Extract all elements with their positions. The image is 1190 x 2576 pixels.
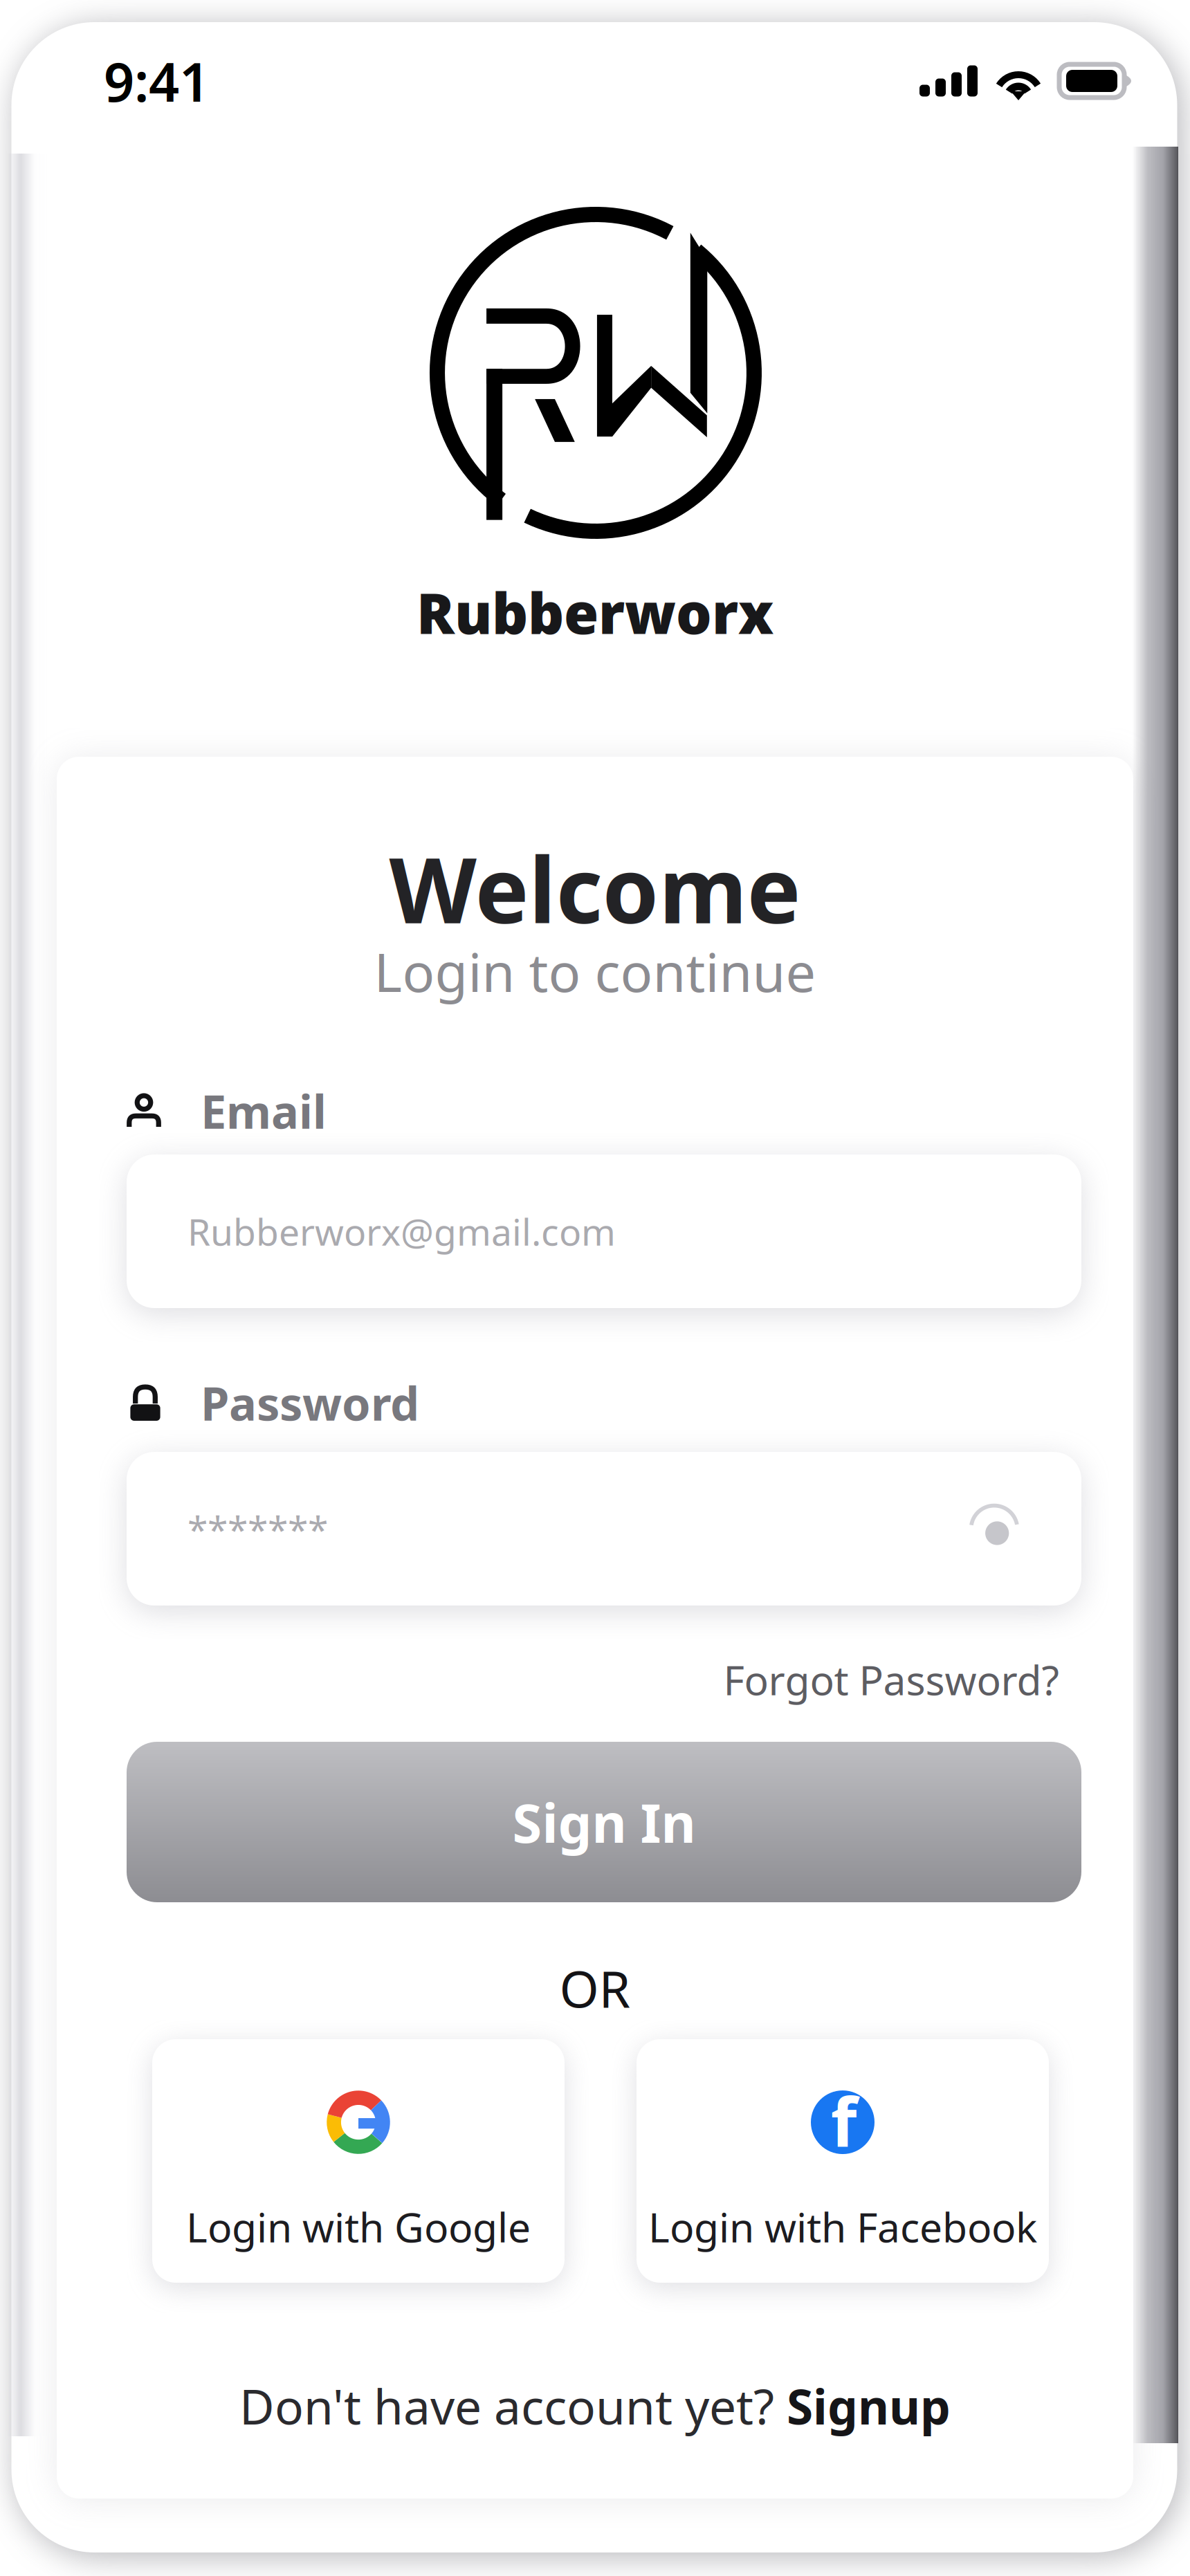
staticText: Don't have account yet? (239, 2374, 787, 2438)
staticText: Forgot Password? (723, 1653, 1059, 1706)
staticText: Welcome (389, 828, 801, 948)
button[interactable]: Forgot Password? (723, 1653, 1059, 1706)
button[interactable]: Login with Google (152, 2039, 565, 2283)
staticText: Login with Google (186, 2200, 531, 2254)
staticText: ******* (187, 1504, 328, 1553)
staticText: Sign In (512, 1787, 696, 1858)
button[interactable]: f (637, 2039, 1049, 2283)
staticText: Rubberworx@gmail.com (187, 1207, 616, 1256)
staticText: OR (559, 1954, 631, 2022)
button[interactable]: Don't have account yet? (239, 2374, 951, 2438)
staticText: Login with Facebook (648, 2200, 1037, 2254)
staticText: f (831, 2076, 857, 2165)
staticText: Rubberworx (416, 575, 773, 650)
staticText: Signup (787, 2374, 951, 2438)
staticText: 9:41 (104, 45, 210, 116)
staticText: Email (201, 1080, 327, 1141)
button[interactable]: Sign In (127, 1742, 1081, 1902)
staticText: Password (201, 1372, 419, 1433)
staticText: Login to continue (374, 936, 816, 1007)
